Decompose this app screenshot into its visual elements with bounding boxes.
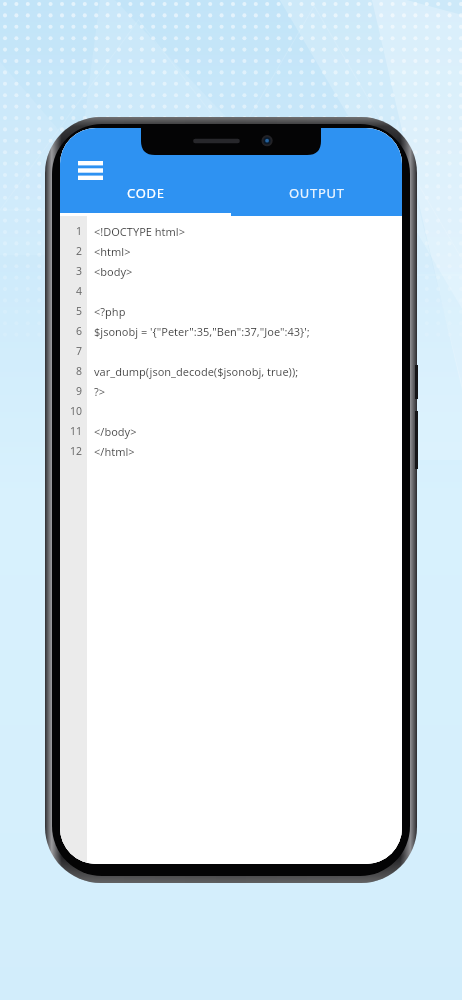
staticText: 3 xyxy=(75,264,82,278)
staticText: 5 xyxy=(75,304,82,318)
staticText: ?> xyxy=(94,384,106,399)
staticText: 9 xyxy=(75,384,82,398)
staticText: CODE xyxy=(127,184,165,202)
staticText: 11 xyxy=(69,424,82,438)
staticText: <!DOCTYPE html> xyxy=(94,224,185,239)
staticText: 4 xyxy=(75,284,82,298)
staticText: 6 xyxy=(75,324,82,338)
button[interactable]: Open navigation menu xyxy=(69,149,111,191)
staticText: 2 xyxy=(75,244,82,258)
staticText: 8 xyxy=(75,364,82,378)
staticText: 7 xyxy=(75,344,82,358)
button[interactable]: OUTPUT xyxy=(231,180,402,216)
button[interactable]: CODE xyxy=(60,180,231,216)
staticText: </body> xyxy=(94,424,137,439)
staticText: OUTPUT xyxy=(289,184,345,202)
staticText: $jsonobj = '{"Peter":35,"Ben":37,"Joe":4… xyxy=(94,324,310,339)
staticText: <?php xyxy=(94,304,126,319)
staticText: 10 xyxy=(69,404,82,418)
staticText: var_dump(json_decode($jsonobj, true)); xyxy=(94,364,299,379)
staticText: </html> xyxy=(94,444,135,459)
staticText: <html> xyxy=(94,244,131,259)
staticText: <body> xyxy=(94,264,133,279)
staticText: 1 xyxy=(75,224,82,238)
staticText: 12 xyxy=(69,444,82,458)
